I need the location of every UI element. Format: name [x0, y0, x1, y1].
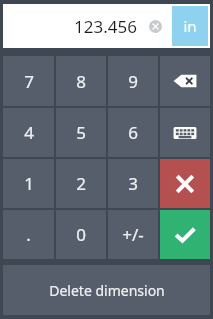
button[interactable]: 6 [108, 108, 158, 157]
staticText: 8 [76, 70, 86, 93]
button[interactable]: 5 [56, 108, 106, 157]
staticText: 0 [76, 223, 86, 246]
staticText: 7 [24, 70, 34, 93]
button[interactable]: Cancel [160, 159, 210, 208]
button[interactable]: +/- [108, 210, 158, 259]
staticText: 9 [128, 70, 138, 93]
staticText: 1 [24, 172, 34, 195]
button[interactable]: 9 [108, 56, 158, 106]
staticText: Delete dimension [49, 281, 165, 300]
button[interactable]: Delete dimension [3, 265, 210, 315]
staticText: 6 [128, 121, 138, 144]
button[interactable]: in [172, 6, 208, 46]
staticText: . [26, 223, 31, 246]
staticText: 4 [24, 121, 34, 144]
button[interactable]: 3 [108, 159, 158, 208]
button[interactable]: 123.456 [3, 4, 170, 48]
staticText: +/- [122, 223, 144, 246]
staticText: in [183, 16, 197, 36]
button[interactable]: . [3, 210, 54, 259]
staticText: 2 [76, 172, 86, 195]
button[interactable]: Clear [144, 15, 166, 37]
button[interactable]: Backspace [160, 56, 210, 106]
staticText: 3 [128, 172, 138, 195]
button[interactable]: 4 [3, 108, 54, 157]
button[interactable]: Accept [160, 210, 210, 259]
staticText: 5 [76, 121, 86, 144]
button[interactable]: 7 [3, 56, 54, 106]
button[interactable]: Show keyboard [160, 108, 210, 157]
button[interactable]: 0 [56, 210, 106, 259]
button[interactable]: 2 [56, 159, 106, 208]
button[interactable]: 8 [56, 56, 106, 106]
button[interactable]: 1 [3, 159, 54, 208]
staticText: 123.456 [74, 15, 137, 38]
